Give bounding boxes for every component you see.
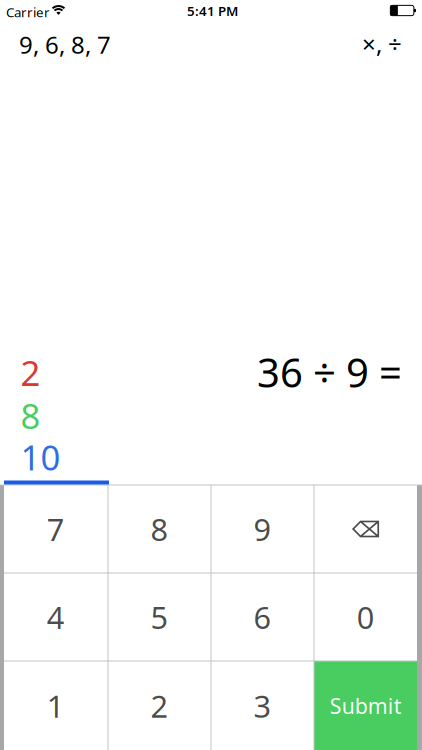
button[interactable]: 9	[211, 485, 313, 572]
staticText: 6	[253, 597, 271, 637]
staticText: 8	[150, 509, 168, 549]
button[interactable]: 2	[108, 661, 210, 750]
button[interactable]: 5	[108, 573, 210, 660]
button[interactable]: 8	[108, 485, 210, 572]
staticText: 10	[20, 434, 60, 480]
button[interactable]: 1	[4, 661, 107, 750]
button[interactable]: 6	[211, 573, 313, 660]
staticText: 9, 6, 8, 7	[19, 29, 111, 60]
staticText: 0	[357, 597, 375, 637]
button[interactable]: 4	[4, 573, 107, 660]
staticText: ×, ÷	[362, 28, 402, 60]
staticText: Carrier	[6, 3, 50, 21]
staticText: 4	[47, 597, 65, 637]
staticText: 5:41 PM	[187, 2, 238, 20]
button[interactable]: Submit	[314, 661, 417, 750]
staticText: 3	[253, 685, 271, 726]
staticText: 36 ÷ 9 =	[257, 345, 402, 398]
staticText: 2	[20, 349, 40, 395]
staticText: 8	[20, 392, 40, 438]
button[interactable]: 7	[4, 485, 107, 572]
staticText: Submit	[330, 692, 402, 720]
staticText: 1	[47, 685, 65, 726]
staticText: 9	[253, 509, 271, 549]
button[interactable]: 0	[314, 573, 417, 660]
staticText: 5	[150, 597, 168, 637]
button[interactable]: Delete	[314, 485, 417, 572]
staticText: 7	[47, 509, 65, 549]
staticText: 2	[150, 685, 168, 726]
button[interactable]: 3	[211, 661, 313, 750]
